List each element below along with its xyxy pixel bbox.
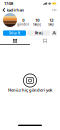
staticText: Henüz hiç gönderi yok [8, 87, 52, 93]
staticText: 17:08 [4, 1, 13, 6]
staticText: takip [48, 23, 54, 26]
staticText: 12 [49, 17, 53, 23]
staticText: kadirhan [7, 7, 25, 13]
staticText: gönderi [17, 23, 29, 26]
button[interactable]: Takip Et [3, 30, 26, 36]
button[interactable]: Mesaj [27, 30, 50, 36]
button[interactable]: Tagged [30, 39, 60, 45]
button[interactable]: Posts [0, 39, 30, 45]
staticText: Takip Et [9, 31, 20, 35]
button[interactable]: Back [2, 8, 7, 12]
staticText: 10 [35, 17, 39, 23]
button[interactable]: Suggested for you [52, 30, 57, 36]
button[interactable]: More options [52, 8, 56, 12]
staticText: takipçi [33, 23, 41, 26]
staticText: 0 [22, 17, 24, 23]
staticText: Mesaj [35, 31, 43, 35]
